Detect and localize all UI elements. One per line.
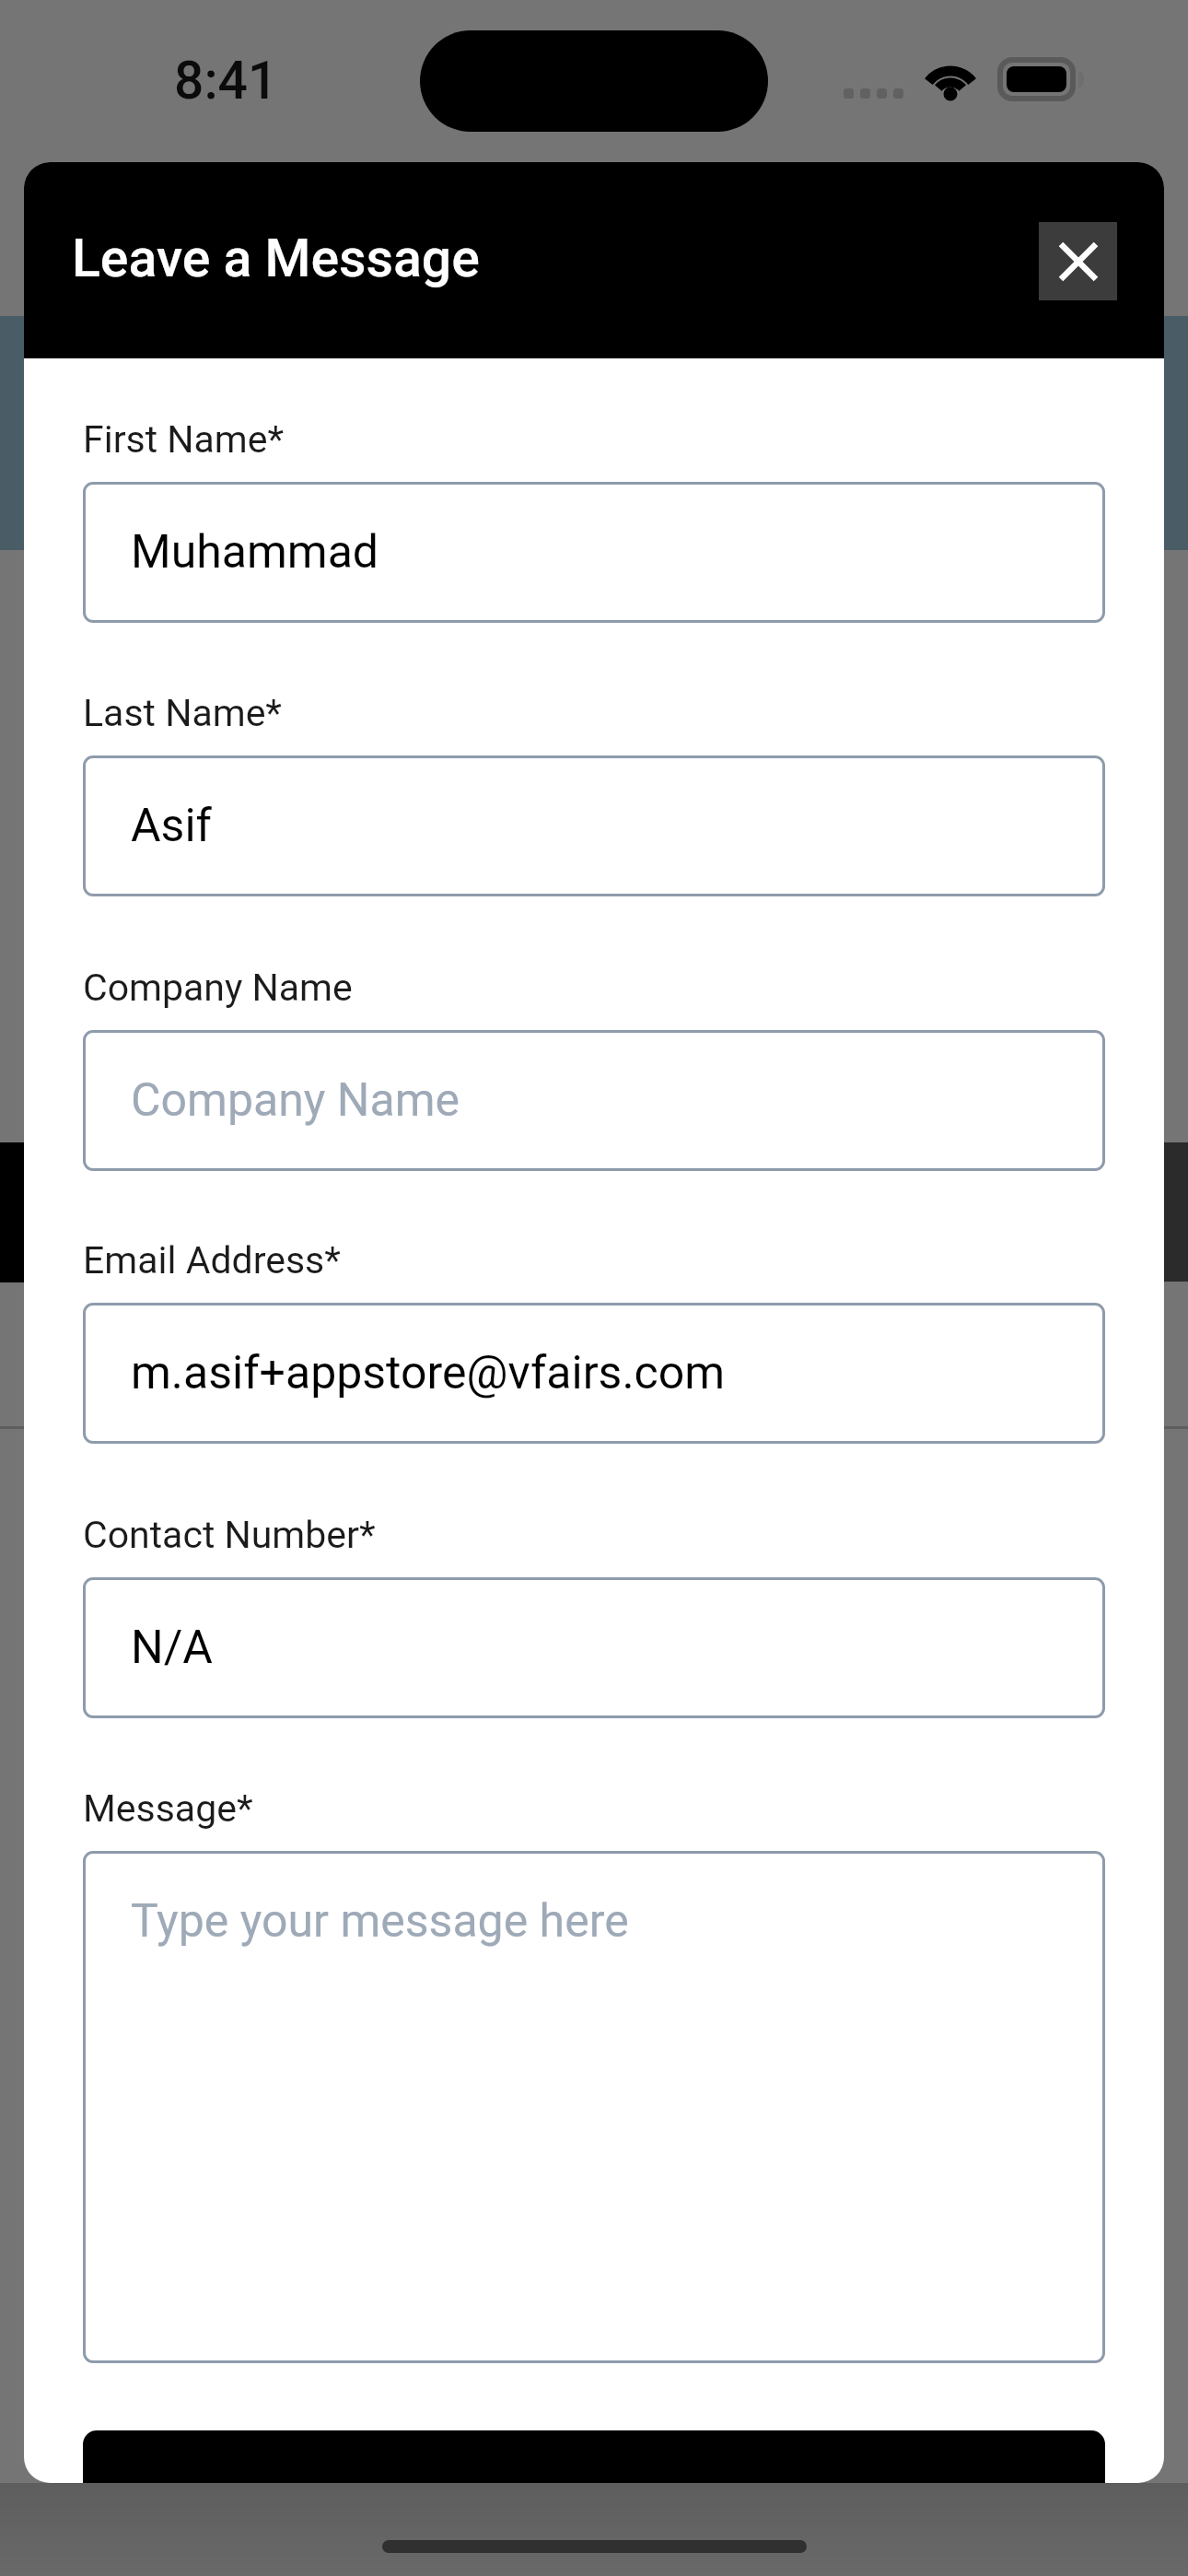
staticText: Muhammad xyxy=(131,525,379,580)
staticText: Contact Number* xyxy=(83,1513,376,1557)
staticText: Type your message here xyxy=(131,1894,629,1949)
staticText: m.asif+appstore@vfairs.com xyxy=(131,1346,726,1400)
button[interactable]: First Name xyxy=(83,482,1105,623)
staticText: 8:41 xyxy=(174,50,278,111)
button[interactable]: Submit xyxy=(83,2430,1105,2483)
staticText: Leave a Message xyxy=(72,228,480,289)
button[interactable]: Message xyxy=(83,1851,1105,2363)
staticText: Company Name xyxy=(131,1073,460,1128)
staticText: N/A xyxy=(131,1621,213,1675)
button[interactable]: Contact Number xyxy=(83,1577,1105,1718)
staticText: Company Name xyxy=(83,966,353,1010)
staticText: First Name* xyxy=(83,417,285,462)
staticText: Last Name* xyxy=(83,691,283,735)
button[interactable]: Company Name xyxy=(83,1030,1105,1171)
staticText: Message* xyxy=(83,1786,253,1831)
button[interactable]: Email Address xyxy=(83,1303,1105,1444)
staticText: Asif xyxy=(131,799,212,853)
button[interactable]: Last Name xyxy=(83,755,1105,896)
button[interactable]: Close xyxy=(1039,222,1117,300)
staticText: Email Address* xyxy=(83,1238,341,1282)
